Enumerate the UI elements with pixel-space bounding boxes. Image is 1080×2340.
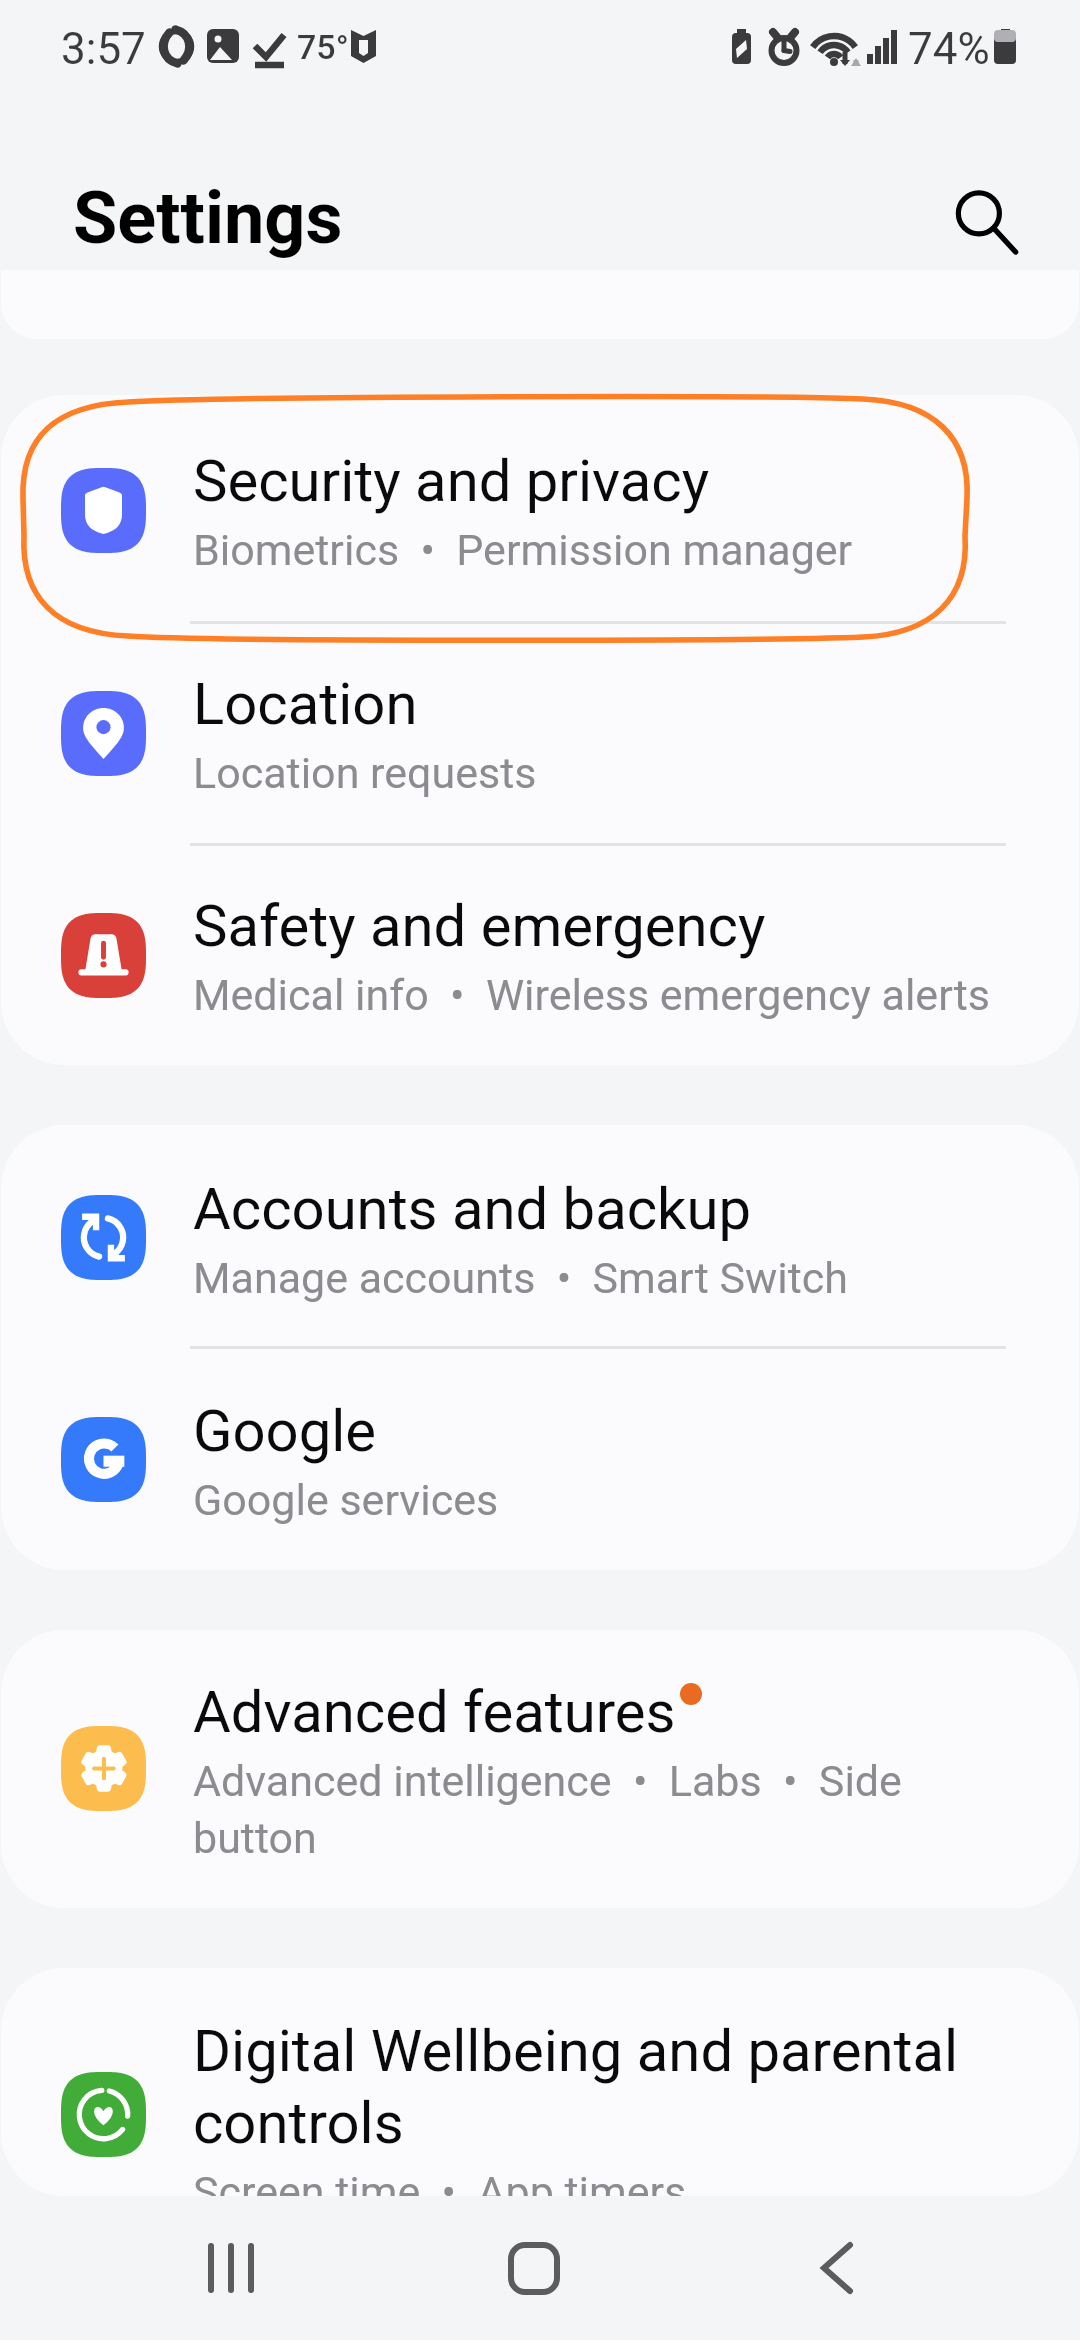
staticText: controls [193, 2089, 404, 2157]
staticText: 75° [297, 27, 349, 67]
staticText: button [193, 1813, 317, 1863]
button[interactable]: Security and privacy [1, 395, 1079, 623]
staticText: Screen time • App timers [193, 2167, 687, 2196]
button[interactable]: Accounts and backup [1, 1125, 1079, 1348]
staticText: Medical info • Wireless emergency alerts [193, 970, 991, 1020]
staticText: Accounts and backup [193, 1175, 752, 1243]
staticText: 3:57 [61, 23, 146, 75]
button[interactable]: Home [474, 2208, 594, 2328]
button[interactable]: Advanced features [1, 1630, 1079, 1908]
button[interactable]: Back [777, 2208, 897, 2328]
staticText: Safety and emergency [193, 892, 766, 960]
staticText: Google services [193, 1475, 499, 1525]
staticText: Google [193, 1397, 377, 1465]
button[interactable]: Location [1, 623, 1079, 845]
button[interactable]: Google [1, 1348, 1079, 1570]
staticText: Advanced intelligence • Labs • Side [193, 1756, 902, 1806]
button[interactable]: Safety and emergency [1, 845, 1079, 1065]
button[interactable]: Recent apps [171, 2208, 291, 2328]
staticText: Location requests [193, 748, 537, 798]
staticText: Digital Wellbeing and parental [193, 2017, 959, 2085]
button[interactable]: Search [930, 166, 1040, 276]
staticText: Biometrics • Permission manager [193, 525, 853, 575]
staticText: Settings [73, 176, 343, 260]
staticText: Location [193, 670, 418, 738]
staticText: Security and privacy [193, 447, 710, 515]
button[interactable]: Digital Wellbeing and parental [1, 1968, 1079, 2196]
staticText: Advanced features [193, 1678, 676, 1746]
staticText: Manage accounts • Smart Switch [193, 1253, 849, 1303]
staticText: 74% [908, 23, 990, 75]
